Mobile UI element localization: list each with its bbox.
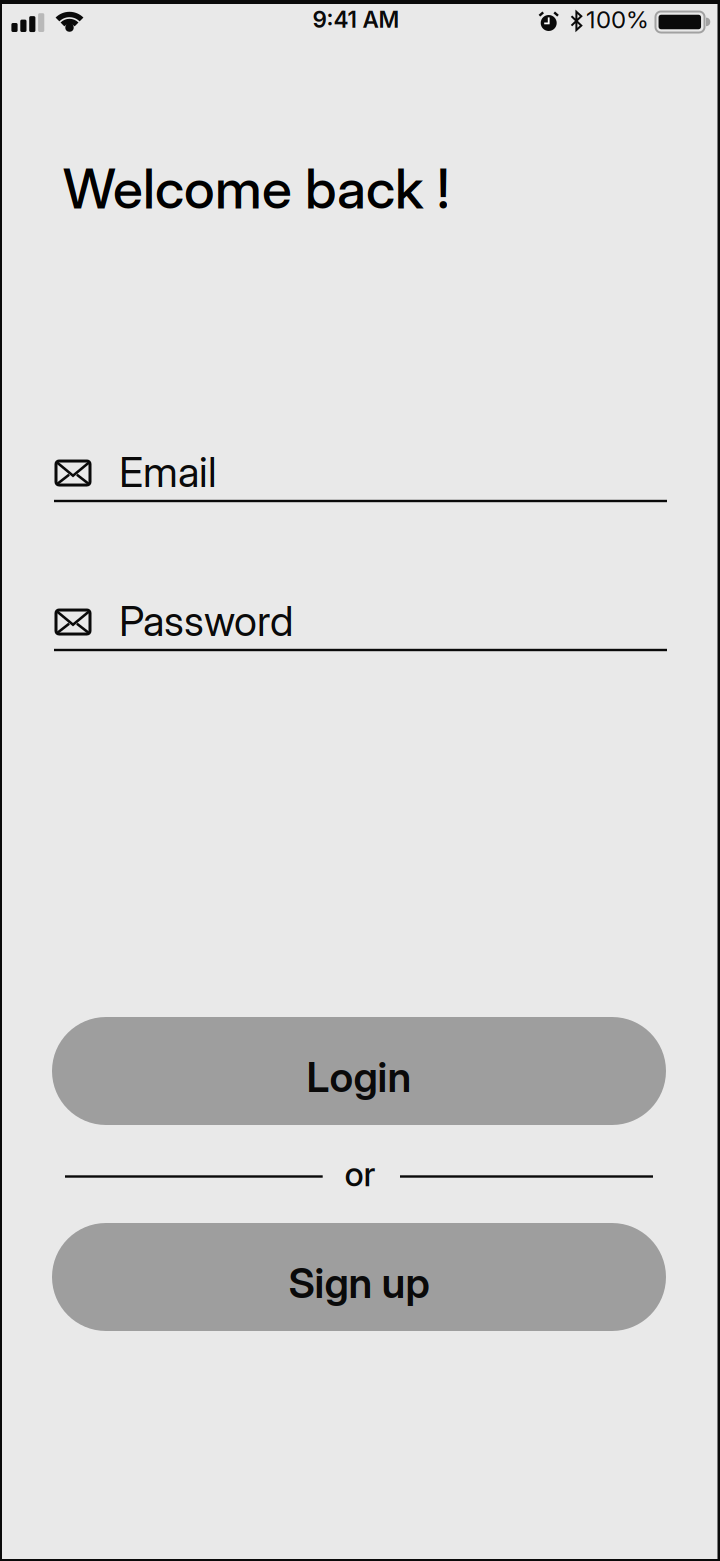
staticText: 9:41 AM [312, 6, 399, 33]
staticText: Login [306, 1053, 411, 1101]
staticText: Password [119, 597, 293, 645]
staticText: Welcome back ! [63, 155, 449, 221]
button[interactable]: Password [54, 591, 667, 653]
button[interactable]: Email [54, 442, 667, 504]
staticText: Email [119, 448, 217, 496]
staticText: 100% [586, 5, 649, 34]
button[interactable]: Sign up [52, 1223, 666, 1331]
button[interactable]: Login [52, 1017, 666, 1125]
staticText: Sign up [288, 1259, 429, 1307]
staticText: or [344, 1154, 375, 1194]
